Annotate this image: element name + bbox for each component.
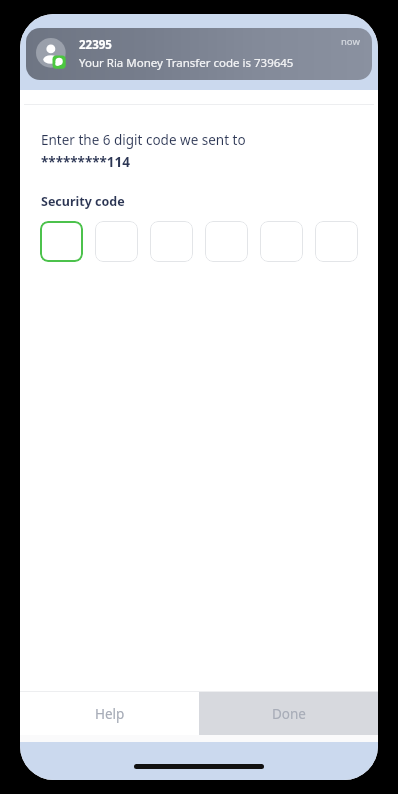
staticText: Done xyxy=(272,705,306,723)
button[interactable]: Security code digit 6 xyxy=(315,221,358,262)
button[interactable]: Sender avatar xyxy=(26,28,372,80)
button[interactable]: Help xyxy=(20,692,199,735)
button[interactable]: Done xyxy=(199,692,378,735)
staticText: Enter the 6 digit code we sent to xyxy=(41,131,246,149)
button[interactable]: Security code digit 5 xyxy=(260,221,303,262)
staticText: Your Ria Money Transfer code is 739645 xyxy=(79,55,294,71)
staticText: Help xyxy=(95,705,125,723)
button[interactable]: Security code digit 1 xyxy=(40,221,83,262)
other: Sender avatar xyxy=(36,38,69,71)
staticText: Security code xyxy=(41,193,125,210)
staticText: now xyxy=(341,35,360,48)
staticText: *********114 xyxy=(41,153,131,171)
button[interactable]: Security code digit 2 xyxy=(95,221,138,262)
staticText: 22395 xyxy=(79,37,112,53)
button[interactable]: Security code digit 4 xyxy=(205,221,248,262)
button[interactable]: Security code digit 3 xyxy=(150,221,193,262)
